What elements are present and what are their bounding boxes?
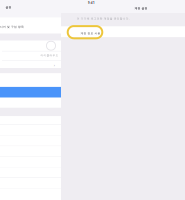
button[interactable]: 계정 설정 (61, 0, 185, 200)
button[interactable]: 디어 및 구입 항목 (0, 0, 61, 200)
button[interactable] (0, 0, 61, 200)
staticText: 설정 (5, 6, 11, 9)
button[interactable]: 설정 (0, 0, 61, 200)
staticText: 아이클라우드 (40, 54, 58, 57)
button[interactable] (0, 0, 61, 200)
staticText: 계정 정보 사용 (80, 32, 100, 35)
staticText: › (54, 62, 55, 68)
staticText: 디어 및 구입 항목 (0, 25, 24, 28)
button[interactable]: › (0, 0, 61, 200)
staticText: 이 기기에 로그인한 계정을 관리합니다. (77, 17, 130, 20)
button[interactable]: 아이클라우드 (0, 0, 61, 200)
staticText: 9:41 (88, 1, 95, 5)
staticText: 계정 설정 (134, 7, 147, 10)
button[interactable]: 계정 정보 사용 (61, 0, 185, 200)
